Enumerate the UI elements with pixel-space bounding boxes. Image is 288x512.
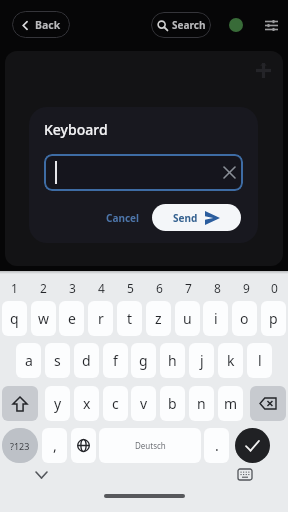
- staticText: h: [168, 351, 177, 370]
- button[interactable]: b: [160, 386, 185, 421]
- button[interactable]: c: [103, 386, 128, 421]
- staticText: Send: [173, 211, 198, 225]
- button[interactable]: 5: [116, 280, 145, 294]
- staticText: a: [25, 351, 33, 370]
- button[interactable]: w: [31, 301, 56, 336]
- button[interactable]: g: [131, 343, 156, 378]
- button[interactable]: [30, 467, 52, 483]
- staticText: b: [168, 394, 177, 413]
- button[interactable]: 7: [174, 280, 203, 294]
- button[interactable]: k: [218, 343, 243, 378]
- button[interactable]: f: [103, 343, 128, 378]
- staticText: ,: [53, 436, 57, 455]
- staticText: i: [214, 309, 218, 328]
- button[interactable]: ,: [42, 428, 67, 463]
- button[interactable]: 4: [87, 280, 116, 294]
- staticText: j: [200, 351, 204, 370]
- staticText: Search: [172, 18, 206, 32]
- staticText: t: [127, 309, 133, 328]
- staticText: 1: [11, 280, 18, 294]
- button[interactable]: [71, 428, 96, 463]
- button[interactable]: Send: [152, 204, 241, 231]
- staticText: s: [54, 351, 61, 370]
- button[interactable]: 2: [29, 280, 58, 294]
- staticText: Cancel: [106, 211, 140, 225]
- staticText: n: [197, 394, 206, 413]
- button[interactable]: l: [247, 343, 272, 378]
- button[interactable]: 8: [203, 280, 232, 294]
- button[interactable]: x: [74, 386, 99, 421]
- button[interactable]: u: [175, 301, 200, 336]
- staticText: y: [54, 394, 62, 413]
- staticText: w: [38, 309, 50, 328]
- staticText: 2: [40, 280, 47, 294]
- button[interactable]: y: [45, 386, 70, 421]
- button[interactable]: [262, 16, 280, 34]
- staticText: 5: [127, 280, 134, 294]
- button[interactable]: d: [74, 343, 99, 378]
- staticText: d: [82, 351, 91, 370]
- button[interactable]: [235, 428, 270, 463]
- button[interactable]: 9: [232, 280, 261, 294]
- button[interactable]: [229, 18, 243, 32]
- button[interactable]: [250, 386, 286, 421]
- button[interactable]: Search: [151, 12, 211, 38]
- staticText: e: [68, 309, 76, 328]
- staticText: q: [10, 309, 19, 328]
- staticText: .: [215, 436, 219, 455]
- staticText: 3: [69, 280, 76, 294]
- button[interactable]: Back: [12, 11, 70, 38]
- staticText: k: [227, 351, 235, 370]
- button[interactable]: z: [146, 301, 171, 336]
- staticText: 7: [185, 280, 192, 294]
- staticText: Keyboard: [44, 120, 108, 139]
- button[interactable]: 3: [58, 280, 87, 294]
- button[interactable]: 6: [145, 280, 174, 294]
- button[interactable]: h: [160, 343, 185, 378]
- button[interactable]: .: [204, 428, 229, 463]
- staticText: m: [224, 394, 238, 413]
- button[interactable]: [234, 465, 256, 483]
- staticText: o: [240, 309, 249, 328]
- button[interactable]: p: [261, 301, 286, 336]
- staticText: Deutsch: [135, 440, 166, 451]
- staticText: g: [139, 351, 148, 370]
- button[interactable]: o: [232, 301, 257, 336]
- button[interactable]: m: [218, 386, 243, 421]
- button[interactable]: j: [189, 343, 214, 378]
- staticText: u: [183, 309, 192, 328]
- staticText: ?123: [10, 440, 30, 452]
- button[interactable]: i: [203, 301, 228, 336]
- staticText: v: [140, 394, 148, 413]
- button[interactable]: r: [88, 301, 113, 336]
- button[interactable]: ?123: [2, 428, 38, 463]
- button[interactable]: e: [59, 301, 84, 336]
- staticText: z: [155, 309, 162, 328]
- staticText: x: [83, 394, 91, 413]
- staticText: f: [113, 351, 118, 370]
- staticText: 9: [243, 280, 250, 294]
- button[interactable]: 1: [0, 280, 29, 294]
- button[interactable]: s: [45, 343, 70, 378]
- staticText: c: [112, 394, 119, 413]
- button[interactable]: a: [16, 343, 41, 378]
- button[interactable]: v: [131, 386, 156, 421]
- button[interactable]: [2, 386, 38, 421]
- button[interactable]: 0: [261, 280, 288, 294]
- button[interactable]: t: [117, 301, 142, 336]
- button[interactable]: [44, 154, 243, 191]
- staticText: p: [269, 309, 278, 328]
- staticText: 8: [214, 280, 221, 294]
- staticText: Back: [35, 18, 61, 32]
- staticText: 6: [156, 280, 163, 294]
- staticText: 4: [98, 280, 105, 294]
- staticText: l: [258, 351, 262, 370]
- button[interactable]: q: [2, 301, 27, 336]
- button[interactable]: Cancel: [101, 204, 145, 231]
- staticText: 0: [271, 280, 278, 294]
- button[interactable]: n: [189, 386, 214, 421]
- staticText: r: [98, 309, 104, 328]
- button[interactable]: Deutsch: [99, 428, 201, 463]
